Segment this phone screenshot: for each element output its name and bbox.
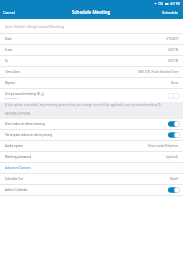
button[interactable]: Schedule For — [0, 174, 183, 185]
button[interactable]: To — [0, 56, 183, 67]
staticText: Schedule Meeting — [72, 9, 111, 15]
staticText: From — [5, 48, 13, 52]
staticText: Audio option — [5, 144, 24, 148]
button[interactable]: Use personal meeting ID — [0, 89, 183, 102]
staticText: 650-555-0199 — [5, 97, 19, 100]
button[interactable]: Advanced Options — [0, 163, 183, 174]
button[interactable]: Switch off — [168, 93, 180, 99]
button[interactable]: Repeat — [0, 78, 183, 89]
button[interactable]: Jane Smith's RingCentral Meeting — [0, 19, 183, 34]
button[interactable]: Cancel — [0, 8, 18, 17]
button[interactable]: Add to Calendar — [0, 185, 183, 196]
button[interactable]: Schedule — [159, 8, 183, 17]
staticText: Cancel — [3, 10, 15, 15]
staticText: 72% — [158, 2, 164, 6]
staticText: If this option is enabled, any meeting o… — [5, 103, 162, 107]
staticText: Schedule For — [5, 177, 24, 181]
button[interactable]: Switch on — [168, 132, 180, 138]
staticText: Myself — [170, 177, 179, 181]
button[interactable]: Date — [0, 34, 183, 45]
staticText: Date — [5, 37, 12, 41]
staticText: To — [5, 59, 9, 63]
button[interactable]: Meeting password — [0, 152, 183, 163]
staticText: Advanced Options — [5, 166, 31, 170]
staticText: Schedule — [162, 10, 179, 15]
staticText: Device audio/Telephone — [148, 144, 179, 148]
staticText: Use personal meeting ID — [5, 92, 40, 96]
staticText: Add to Calendar — [5, 188, 28, 192]
staticText: Host video on when starting — [5, 122, 45, 126]
staticText: Participant video on when joining — [5, 133, 53, 137]
staticText: 3:00 PM — [168, 48, 179, 52]
button[interactable]: Host video on when starting — [0, 119, 183, 130]
button[interactable]: Switch on — [168, 121, 180, 127]
staticText: 4:57 PM — [170, 2, 180, 6]
staticText: MEETING OPTIONS — [5, 112, 31, 116]
staticText: Never — [171, 81, 179, 85]
button[interactable]: Time Zone — [0, 67, 183, 78]
button[interactable]: Audio option — [0, 141, 183, 152]
staticText: GMT-7:00, Pacific Standard Time — [138, 70, 179, 74]
staticText: Repeat — [5, 81, 15, 85]
staticText: 4:00 PM — [168, 59, 179, 63]
staticText: 3/15/2017 — [166, 37, 179, 41]
staticText: Meeting password — [5, 155, 32, 159]
staticText: Time Zone — [5, 70, 20, 74]
button[interactable]: From — [0, 45, 183, 56]
staticText: (optional) — [166, 155, 179, 159]
button[interactable]: Participant video on when joining — [0, 130, 183, 141]
button[interactable]: Switch on — [168, 187, 180, 193]
staticText: Jane Smith's RingCentral Meeting — [5, 24, 65, 29]
